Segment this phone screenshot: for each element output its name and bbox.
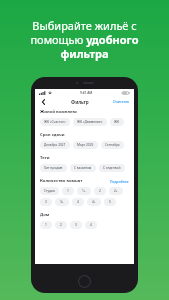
button[interactable]: 3 <box>40 198 52 206</box>
button[interactable]: ЖК <box>110 118 124 126</box>
button[interactable]: С камином <box>70 164 96 172</box>
staticText: 4 <box>90 223 92 227</box>
staticText: Хит продаж <box>44 166 63 170</box>
button[interactable]: Сентябрь <box>101 141 124 149</box>
staticText: Фильтр <box>71 99 89 105</box>
button[interactable]: Хит продаж <box>40 164 67 172</box>
button[interactable]: 2 <box>94 187 106 195</box>
button[interactable]: Подробнее <box>110 179 129 184</box>
button[interactable]: Март 2025 <box>73 141 98 149</box>
staticText: ЖК <box>114 120 120 124</box>
button[interactable]: ЖК «Счастье» <box>40 118 70 126</box>
staticText: 9:41 AM <box>80 91 93 95</box>
button[interactable]: 3+ <box>55 198 69 206</box>
staticText: 5 <box>109 200 111 204</box>
staticText: Жилой комплекс <box>40 109 78 115</box>
button[interactable]: 4 <box>85 221 97 229</box>
button[interactable]: 3 <box>70 221 82 229</box>
button[interactable]: Студия <box>40 187 59 195</box>
button[interactable]: Назад <box>39 97 48 106</box>
staticText: С камином <box>74 166 92 170</box>
staticText: Сентябрь <box>105 143 120 147</box>
staticText: 2+ <box>114 189 118 193</box>
button[interactable]: 1 <box>62 187 74 195</box>
staticText: ЖК «Счастье» <box>44 120 66 124</box>
staticText: 2 <box>60 223 62 227</box>
button[interactable]: 1 <box>40 221 52 229</box>
staticText: Количество комнат <box>40 178 83 184</box>
staticText: ЖК «Движение» <box>77 120 103 124</box>
button[interactable]: Декабрь 2021 <box>40 141 70 149</box>
staticText: 3 <box>45 200 47 204</box>
staticText: Декабрь 2021 <box>44 143 66 147</box>
button[interactable]: С отделкой <box>99 164 125 172</box>
staticText: 4+ <box>92 200 96 204</box>
staticText: Март 2025 <box>77 143 94 147</box>
staticText: 3+ <box>60 200 64 204</box>
staticText: 4 <box>77 200 79 204</box>
button[interactable]: ЖК «Движение» <box>73 118 107 126</box>
staticText: 3 <box>75 223 77 227</box>
staticText: Срок сдачи <box>40 132 65 138</box>
staticText: 2 <box>99 189 101 193</box>
button[interactable]: 1+ <box>77 187 91 195</box>
button[interactable]: Home <box>78 275 91 288</box>
staticText: 1 <box>45 223 47 227</box>
staticText: Выбирайте жильё с помощью удобного фильт… <box>30 18 139 61</box>
button[interactable]: Очистить <box>113 99 130 104</box>
staticText: Студия <box>44 189 55 193</box>
button[interactable]: 4+ <box>87 198 101 206</box>
staticText: Подробнее <box>110 179 129 184</box>
staticText: Дом <box>40 212 50 218</box>
button[interactable]: 2+ <box>109 187 123 195</box>
button[interactable]: 2 <box>55 221 67 229</box>
staticText: 1+ <box>82 189 86 193</box>
staticText: С отделкой <box>103 166 121 170</box>
button[interactable]: 5 <box>104 198 116 206</box>
staticText: 1 <box>67 189 69 193</box>
button[interactable]: 4 <box>72 198 84 206</box>
staticText: Очистить <box>113 99 130 104</box>
staticText: Теги <box>40 155 50 161</box>
